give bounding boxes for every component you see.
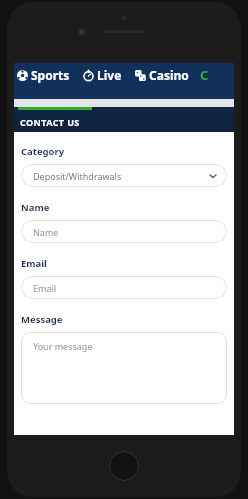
button[interactable]: Home [109,451,139,481]
staticText: Name [21,201,50,214]
button[interactable]: Deposit/Withdrawals [21,164,227,187]
staticText: Name [33,226,59,238]
button[interactable]: C [200,66,209,84]
staticText: Message [21,313,63,326]
button[interactable]: Sports [15,63,72,87]
staticText: Email [21,257,47,270]
staticText: Email [33,282,57,294]
button[interactable]: Name [21,220,227,243]
staticText: Deposit/Withdrawals [33,170,122,182]
staticText: Your message [33,340,93,352]
staticText: Sports [31,67,70,83]
staticText: C [200,66,209,84]
button[interactable]: Your message [21,332,227,404]
button[interactable]: Casino [133,63,191,87]
button[interactable]: Live [81,63,124,87]
staticText: Live [97,67,122,83]
staticText: Category [21,145,65,158]
staticText: CONTACT US [20,116,80,128]
button[interactable]: Email [21,276,227,299]
staticText: Casino [149,67,189,83]
